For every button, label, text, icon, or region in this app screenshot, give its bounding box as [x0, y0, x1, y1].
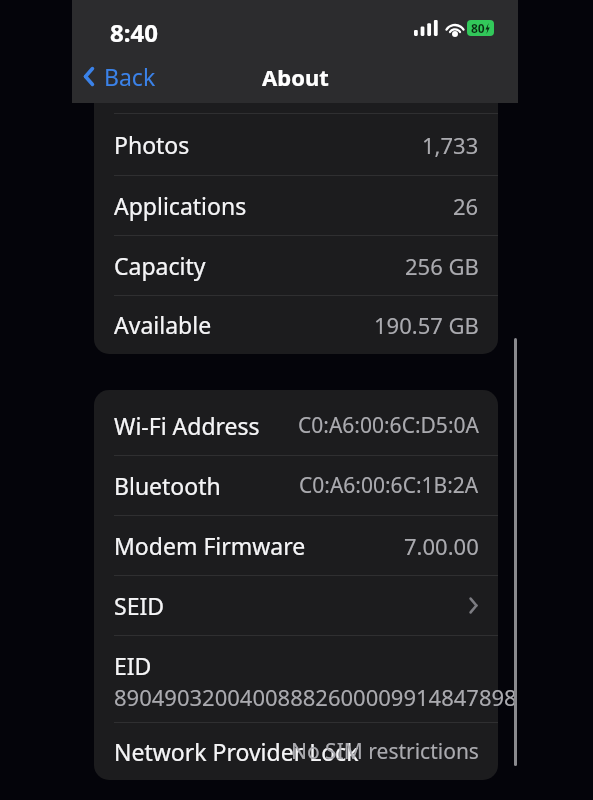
- staticText: Modem Firmware: [114, 530, 306, 561]
- staticText: Capacity: [114, 250, 206, 281]
- button[interactable]: Bluetooth: [94, 456, 498, 515]
- button[interactable]: Wi-Fi Address: [94, 396, 498, 455]
- staticText: Wi-Fi Address: [114, 410, 260, 441]
- staticText: 1,733: [422, 130, 479, 160]
- staticText: Back: [104, 61, 156, 92]
- staticText: 7.00.00: [404, 531, 479, 561]
- button[interactable]: SEID: [94, 576, 498, 635]
- button[interactable]: Network Provider Lock: [94, 723, 498, 780]
- staticText: Bluetooth: [114, 470, 221, 501]
- button[interactable]: Available: [94, 296, 498, 353]
- staticText: Network Provider Lock: [114, 736, 359, 767]
- staticText: 190.57 GB: [374, 310, 479, 340]
- staticText: 80: [471, 20, 485, 36]
- staticText: About: [262, 62, 329, 92]
- button[interactable]: Photos: [94, 114, 498, 175]
- staticText: SEID: [114, 590, 165, 621]
- staticText: C0:A6:00:6C:1B:2A: [299, 471, 479, 500]
- staticText: 89049032004008882600009914847898: [114, 682, 517, 712]
- button[interactable]: EID: [94, 636, 498, 722]
- staticText: No SIM restrictions: [291, 737, 479, 766]
- staticText: Applications: [114, 190, 247, 221]
- staticText: 26: [453, 191, 479, 221]
- other: Cellular signal: [414, 20, 439, 36]
- staticText: C0:A6:00:6C:D5:0A: [298, 411, 479, 440]
- staticText: Photos: [114, 129, 190, 160]
- other: Battery 80 percent, charging: [467, 20, 494, 36]
- button[interactable]: Modem Firmware: [94, 516, 498, 575]
- staticText: 256 GB: [405, 251, 479, 281]
- staticText: EID: [114, 650, 152, 681]
- other: Wi-Fi: [445, 19, 465, 36]
- other: Open SEID: [468, 596, 479, 615]
- button[interactable]: Back: [82, 59, 156, 94]
- button[interactable]: Capacity: [94, 236, 498, 295]
- staticText: Available: [114, 309, 212, 340]
- staticText: 8:40: [110, 16, 158, 49]
- button[interactable]: Applications: [94, 176, 498, 235]
